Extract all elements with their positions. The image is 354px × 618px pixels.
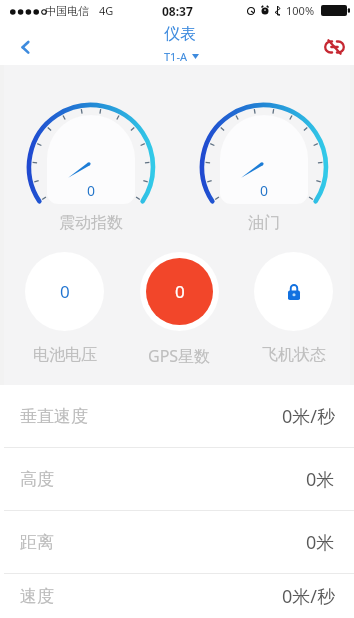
staticText: 100%	[286, 3, 315, 18]
button[interactable]: 垂直速度	[0, 385, 354, 448]
button[interactable]: 高度	[0, 448, 354, 511]
staticText: 油门	[248, 213, 280, 233]
staticText: T1-A	[164, 49, 187, 64]
staticText: 高度	[20, 469, 54, 490]
button[interactable]: 飞机状态	[254, 252, 333, 365]
button[interactable]: T1-A	[164, 49, 199, 64]
staticText: 震动指数	[59, 213, 123, 233]
button[interactable]: Back	[2, 23, 46, 67]
button[interactable]: Disconnected	[312, 25, 354, 69]
staticText: 0米/秒	[282, 404, 335, 429]
staticText: 08:37	[162, 3, 193, 19]
staticText: 速度	[20, 586, 54, 607]
staticText: GPS星数	[148, 345, 211, 367]
staticText: 电池电压	[33, 345, 97, 365]
staticText: 垂直速度	[20, 406, 88, 427]
button[interactable]: 距离	[0, 511, 354, 574]
staticText: 飞机状态	[262, 345, 326, 365]
staticText: 0	[87, 181, 96, 200]
staticText: 0	[175, 280, 185, 303]
staticText: 0	[260, 181, 269, 200]
staticText: 0	[60, 280, 70, 303]
staticText: 中国电信	[45, 4, 89, 18]
staticText: 4G	[99, 3, 114, 18]
button[interactable]: 0	[140, 252, 219, 367]
button[interactable]: 速度	[0, 574, 354, 618]
staticText: 0米	[306, 530, 335, 555]
staticText: 仪表	[164, 24, 196, 44]
staticText: 0米/秒	[282, 584, 335, 609]
staticText: 0米	[306, 467, 335, 492]
staticText: 距离	[20, 532, 54, 553]
button[interactable]: 0	[25, 252, 104, 365]
